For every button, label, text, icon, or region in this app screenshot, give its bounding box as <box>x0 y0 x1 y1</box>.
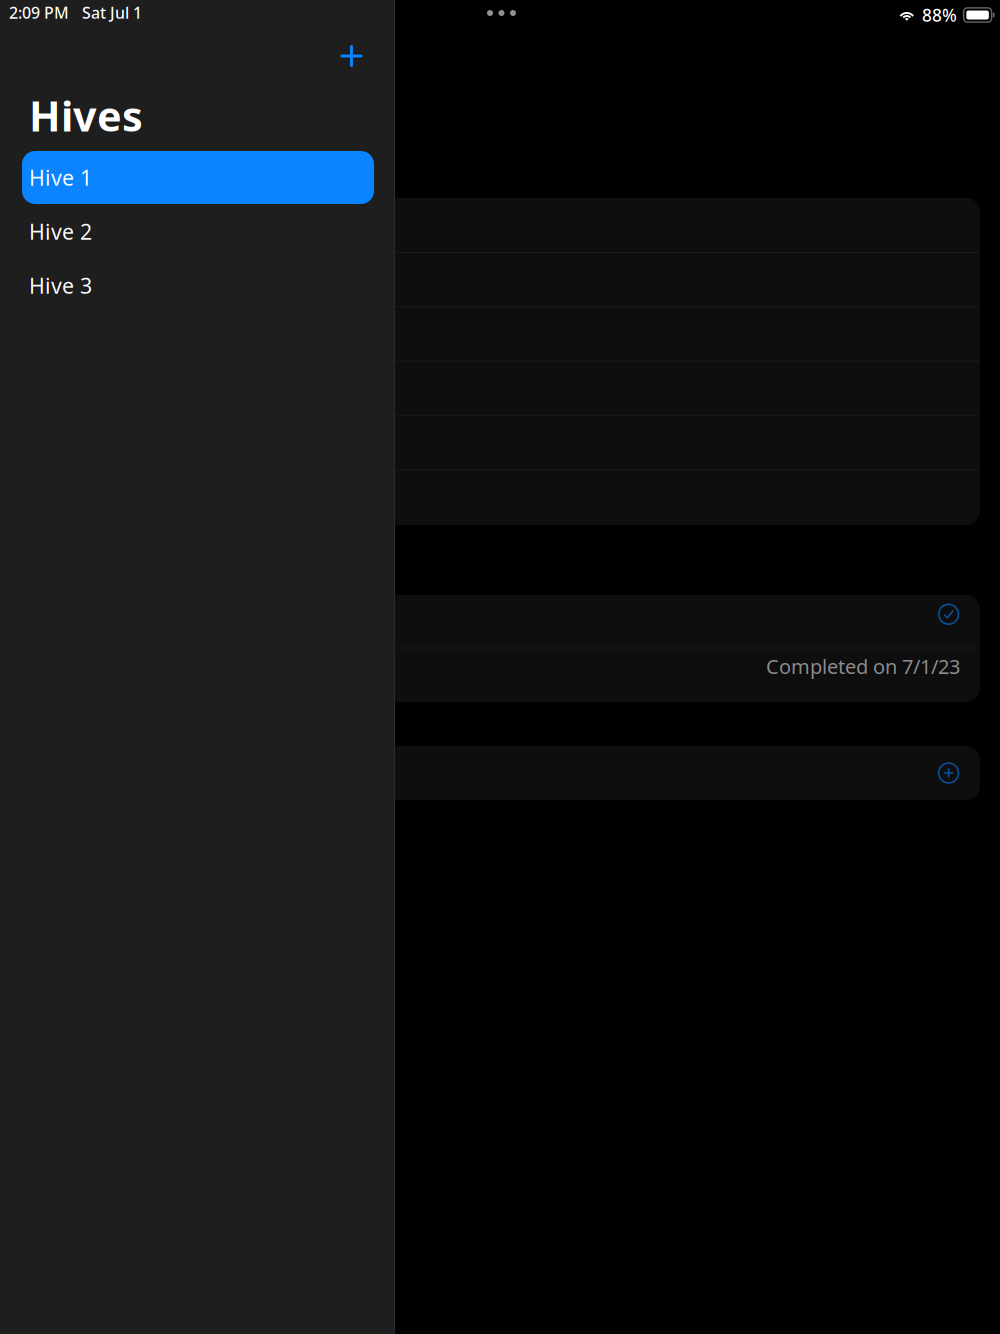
staticText: Hive 3 <box>29 271 92 300</box>
button[interactable]: Completed on 7/1/23 <box>330 648 980 702</box>
button[interactable]: Add Hive <box>329 34 373 78</box>
button[interactable]: Hive 2 <box>22 205 374 258</box>
staticText: 2:09 PM <box>9 2 69 23</box>
button[interactable]: Completed <box>939 611 958 631</box>
button[interactable]: Hive 3 <box>22 259 374 312</box>
button[interactable]: Task 2 <box>330 253 980 306</box>
staticText: 88% <box>922 3 957 26</box>
button[interactable]: Task 1 <box>330 198 980 252</box>
button[interactable]: Task 4 <box>330 362 980 415</box>
staticText: Hive 1 <box>29 163 92 192</box>
staticText: Hive 2 <box>29 217 92 246</box>
button[interactable]: Task 5 <box>330 416 980 470</box>
staticText: Sat Jul 1 <box>82 2 142 23</box>
button[interactable]: Hive 1 <box>22 151 374 204</box>
button[interactable]: Task 3 <box>330 307 980 361</box>
staticText: Hives <box>29 88 143 143</box>
button[interactable]: Add item <box>939 763 958 783</box>
staticText: Completed on 7/1/23 <box>766 653 960 680</box>
button[interactable]: Task 6 <box>330 471 980 524</box>
